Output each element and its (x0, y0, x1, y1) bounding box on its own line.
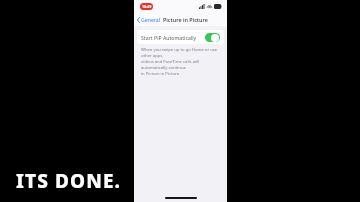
button[interactable]: Start PiP Automatically (137, 30, 224, 44)
staticText: Start PiP Automatically (141, 34, 197, 41)
button[interactable]: General (134, 14, 164, 25)
staticText: 18:49 (142, 4, 152, 9)
button[interactable]: Start PiP Automatically toggle, on (205, 33, 220, 42)
staticText: When you swipe up to go Home or use othe… (141, 47, 221, 77)
staticText: ITS DONE. (16, 168, 122, 194)
staticText: Picture in Picture (163, 16, 208, 23)
staticText: General (141, 16, 161, 23)
